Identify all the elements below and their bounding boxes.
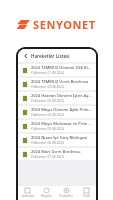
button[interactable]: 2024 Mayıs Muhtasar ve Prim Hizmet [18,120,96,132]
staticText: 2024 TEMMUZ Dönemi SGK Bildirgesi [31,65,92,70]
button[interactable]: 2024 Nisan İşe Giriş Bildirgesi [18,134,96,146]
staticText: Belgeler [41,194,52,198]
button[interactable]: 2024 Mayıs Dönemi Aylık Prim Hizmet Belg… [18,106,96,118]
staticText: 2024 Mart Ücret Bordrosu [31,149,81,154]
staticText: Yüklenme: 06.08.2024 [31,141,64,145]
staticText: Yüklenme: 05.08.2024 [31,127,64,131]
button[interactable]: SENYONET logo [17,17,96,32]
staticText: Hareketler Listesi [31,53,70,59]
button[interactable]: Hareketler [56,186,76,200]
staticText: SENYONET [33,17,96,32]
staticText: Profil [83,194,90,198]
staticText: Anasayfa [22,194,34,198]
staticText: Yüklenme: 01.08.2024 [31,71,64,75]
staticText: 2024 TEMMUZ Ücret Bordrosu [31,79,89,84]
staticText: Yüklenme: 02.08.2024 [31,85,64,89]
staticText: 2024 Mayıs Dönemi Aylık Prim Hizmet Belg… [31,107,92,112]
staticText: 2024 Mayıs Muhtasar ve Prim Hizmet [31,121,92,126]
button[interactable]: 2024 TEMMUZ Dönemi SGK Bildirgesi [18,64,96,76]
button[interactable]: Back [22,52,30,60]
staticText: Yüklenme: 04.08.2024 [31,113,64,117]
button[interactable]: Belgeler [37,186,56,200]
button[interactable]: 2024 TEMMUZ Ücret Bordrosu [18,78,96,90]
staticText: Yüklenme: 03.08.2024 [31,99,64,103]
staticText: Hareketler [59,194,73,198]
staticText: 2024 Nisan İşe Giriş Bildirgesi [31,135,88,140]
staticText: Yüklenme: 07.08.2024 [31,155,64,159]
button[interactable]: 2024 Haziran Dönemi İşten Ayrılış Bildir… [18,92,96,104]
button[interactable]: Anasayfa [18,186,37,200]
staticText: 2024 Haziran Dönemi İşten Ayrılış Bildir… [31,93,92,98]
button[interactable]: Profil [76,186,96,200]
button[interactable]: 2024 Mart Ücret Bordrosu [18,148,96,160]
